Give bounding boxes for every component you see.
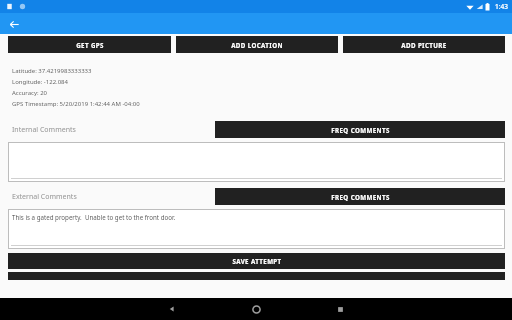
staticText: Internal Comments (12, 125, 76, 135)
staticText: FREQ COMMENTS (331, 193, 390, 201)
button[interactable]: ADD LOCATION (176, 36, 338, 53)
staticText: External Comments (12, 192, 77, 202)
button[interactable]: FREQ COMMENTS (215, 121, 505, 138)
button[interactable]: Recent apps (323, 298, 357, 320)
staticText: ADD LOCATION (231, 41, 283, 49)
staticText: Accuracy: 20 (12, 89, 47, 97)
staticText: Longitude: -122.084 (12, 78, 68, 86)
staticText: Latitude: 37.4219983333333 (12, 67, 92, 75)
staticText: FREQ COMMENTS (331, 126, 390, 134)
staticText: SAVE ATTEMPT (232, 257, 282, 265)
button[interactable]: Back (5, 15, 23, 33)
staticText: ADD PICTURE (401, 41, 447, 49)
button[interactable]: FREQ COMMENTS (215, 188, 505, 205)
button[interactable] (8, 142, 505, 182)
staticText: 1:43 (495, 2, 508, 11)
button[interactable]: ADD PICTURE (343, 36, 505, 53)
staticText: GET GPS (76, 41, 104, 49)
button[interactable]: This is a gated property. Unable to get … (8, 209, 505, 249)
button[interactable]: GET GPS (8, 36, 171, 53)
button[interactable]: Back (155, 298, 189, 320)
button[interactable]: SAVE ATTEMPT (8, 253, 505, 269)
staticText: This is a gated property. Unable to get … (12, 213, 176, 221)
button[interactable]: Home (239, 298, 273, 320)
staticText: GPS Timestamp: 5/20/2019 1:42:44 AM -04:… (12, 100, 140, 108)
